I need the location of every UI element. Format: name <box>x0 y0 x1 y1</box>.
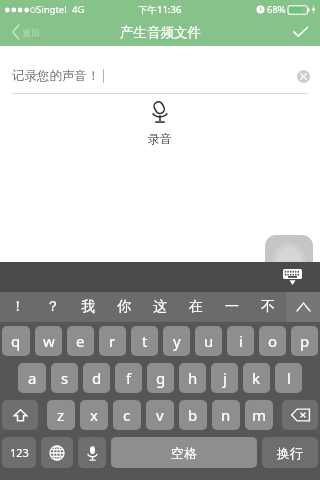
button[interactable]: ？ <box>35 292 70 322</box>
button[interactable]: ！ <box>0 292 35 322</box>
button[interactable]: Shift <box>2 400 38 430</box>
button[interactable]: 不 <box>250 292 286 322</box>
staticText: 你 <box>117 298 131 316</box>
staticText: e <box>76 331 85 351</box>
staticText: Singtel <box>36 3 67 16</box>
button[interactable]: b <box>179 400 207 430</box>
staticText: f <box>126 368 132 388</box>
button[interactable]: Backspace <box>282 400 318 430</box>
staticText: s <box>61 368 69 388</box>
button[interactable]: a <box>18 363 46 393</box>
button[interactable]: f <box>115 363 142 393</box>
button[interactable]: j <box>211 363 238 393</box>
button[interactable]: v <box>146 400 174 430</box>
staticText: 下午11:36 <box>138 3 182 16</box>
button[interactable]: 在 <box>178 292 214 322</box>
button[interactable]: More suggestions <box>286 292 320 322</box>
staticText: x <box>90 405 98 425</box>
button[interactable]: q <box>2 326 30 356</box>
button[interactable]: Voice input <box>78 437 106 468</box>
staticText: 一 <box>225 298 239 316</box>
staticText: ！ <box>11 298 25 316</box>
staticText: l <box>287 368 291 388</box>
staticText: 产生音频文件 <box>120 24 201 41</box>
staticText: 记录您的声音！ <box>12 68 100 84</box>
staticText: y <box>173 331 181 351</box>
button[interactable]: 这 <box>142 292 178 322</box>
button[interactable]: s <box>51 363 78 393</box>
button[interactable]: c <box>113 400 141 430</box>
staticText: g <box>156 368 166 388</box>
button[interactable]: 空格 <box>111 437 257 468</box>
button[interactable]: Switch language <box>41 437 73 468</box>
staticText: 4G <box>72 3 85 16</box>
staticText: n <box>221 405 231 425</box>
button[interactable]: i <box>227 326 254 356</box>
button[interactable]: z <box>47 400 75 430</box>
staticText: p <box>300 331 310 351</box>
staticText: u <box>204 331 214 351</box>
button[interactable]: n <box>212 400 240 430</box>
button[interactable]: l <box>275 363 302 393</box>
button[interactable]: x <box>80 400 108 430</box>
button[interactable]: y <box>163 326 190 356</box>
staticText: d <box>92 368 102 388</box>
staticText: j <box>223 368 227 388</box>
button[interactable]: r <box>99 326 126 356</box>
button[interactable]: g <box>147 363 174 393</box>
button[interactable]: Record <box>265 235 313 283</box>
staticText: z <box>57 405 65 425</box>
button[interactable]: Back <box>0 21 50 43</box>
button[interactable]: o <box>259 326 286 356</box>
staticText: 不 <box>261 298 275 316</box>
staticText: 在 <box>189 298 203 316</box>
staticText: k <box>252 368 261 388</box>
button[interactable]: k <box>243 363 270 393</box>
staticText: c <box>123 405 131 425</box>
button[interactable]: 我 <box>70 292 106 322</box>
staticText: r <box>109 331 116 351</box>
staticText: v <box>156 405 164 425</box>
staticText: 空格 <box>171 445 197 461</box>
button[interactable]: t <box>131 326 158 356</box>
button[interactable]: Clear text <box>297 70 310 83</box>
button[interactable]: 录音 <box>148 100 172 146</box>
button[interactable]: u <box>195 326 222 356</box>
staticText: q <box>11 331 21 351</box>
staticText: 68% <box>267 3 286 16</box>
staticText: b <box>188 405 198 425</box>
button[interactable]: 换行 <box>262 437 318 468</box>
staticText: 录音 <box>148 131 172 146</box>
button[interactable]: Hide keyboard <box>283 269 302 285</box>
staticText: 换行 <box>277 445 303 461</box>
staticText: ？ <box>46 298 60 316</box>
button[interactable]: p <box>291 326 318 356</box>
staticText: t <box>142 331 148 351</box>
button[interactable]: Done <box>281 22 320 42</box>
staticText: 123 <box>10 445 29 460</box>
staticText: m <box>252 405 267 425</box>
button[interactable]: 你 <box>106 292 142 322</box>
button[interactable]: m <box>245 400 273 430</box>
button[interactable]: w <box>35 326 62 356</box>
button[interactable]: d <box>83 363 110 393</box>
staticText: i <box>239 331 243 351</box>
staticText: 我 <box>81 298 95 316</box>
staticText: a <box>28 368 37 388</box>
button[interactable]: e <box>67 326 94 356</box>
button[interactable]: 一 <box>214 292 250 322</box>
staticText: w <box>43 331 55 351</box>
staticText: 返回 <box>22 27 40 38</box>
button[interactable]: 123 <box>2 437 36 468</box>
staticText: 这 <box>153 298 167 316</box>
staticText: o <box>268 331 278 351</box>
button[interactable]: h <box>179 363 206 393</box>
staticText: h <box>188 368 198 388</box>
